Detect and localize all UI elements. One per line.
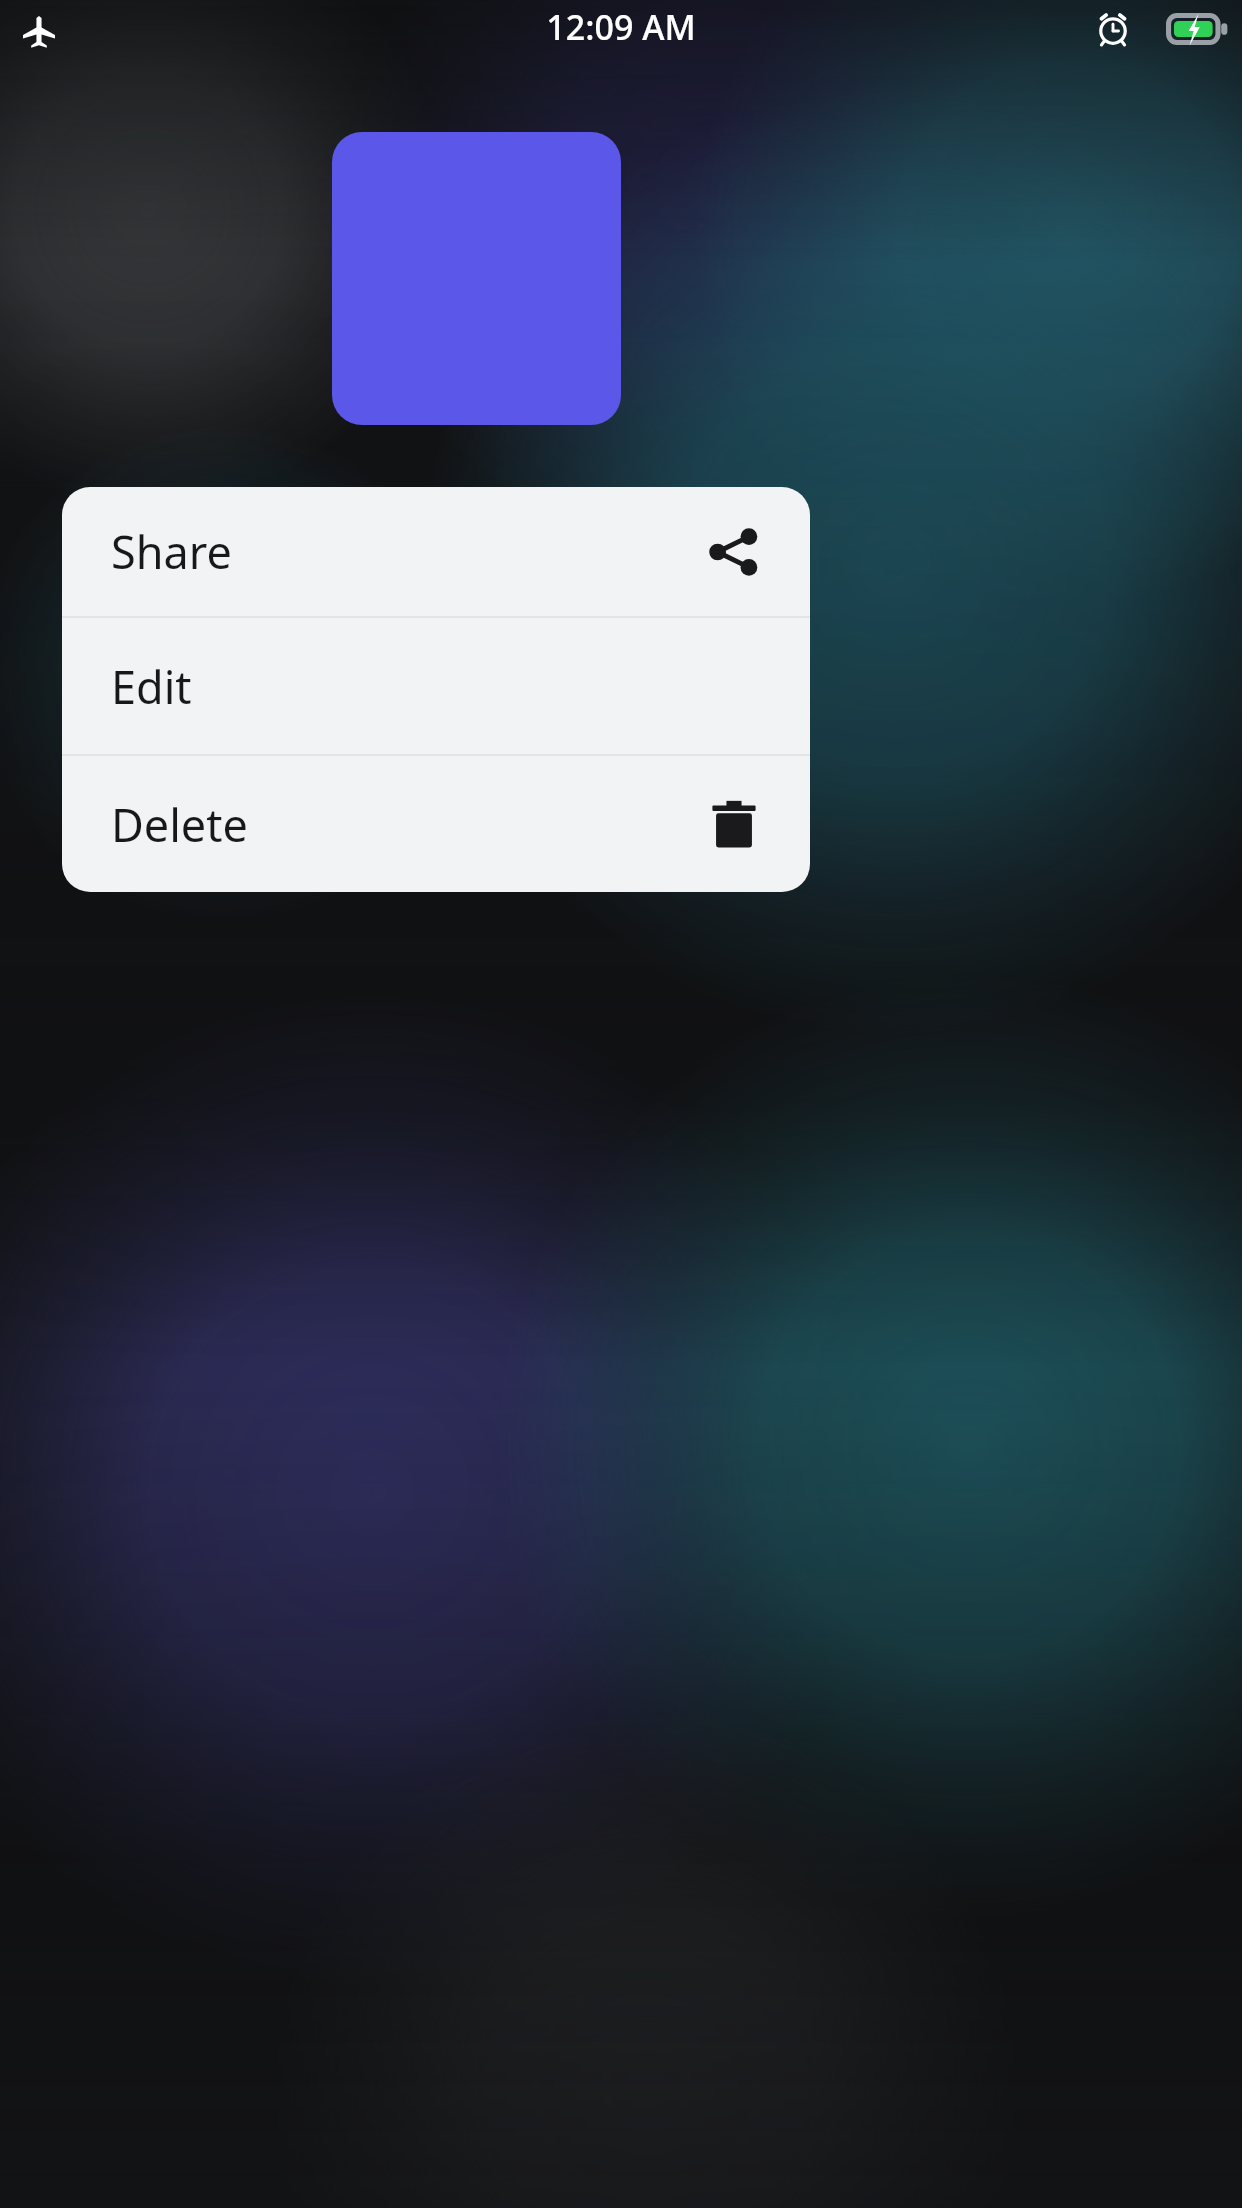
staticText: Edit xyxy=(111,656,192,717)
staticText: Share xyxy=(111,521,232,582)
other: Battery charging xyxy=(1166,13,1228,45)
staticText: 12:09 AM xyxy=(546,4,696,50)
other: Delete xyxy=(708,798,760,850)
button[interactable] xyxy=(332,132,621,425)
button[interactable]: Delete xyxy=(62,756,810,892)
button[interactable]: Share xyxy=(62,487,810,616)
other: Alarm set xyxy=(1096,12,1130,46)
other: Airplane mode xyxy=(22,14,56,48)
button[interactable]: Edit xyxy=(62,618,810,754)
staticText: Delete xyxy=(111,794,248,855)
other: Share xyxy=(706,525,760,579)
